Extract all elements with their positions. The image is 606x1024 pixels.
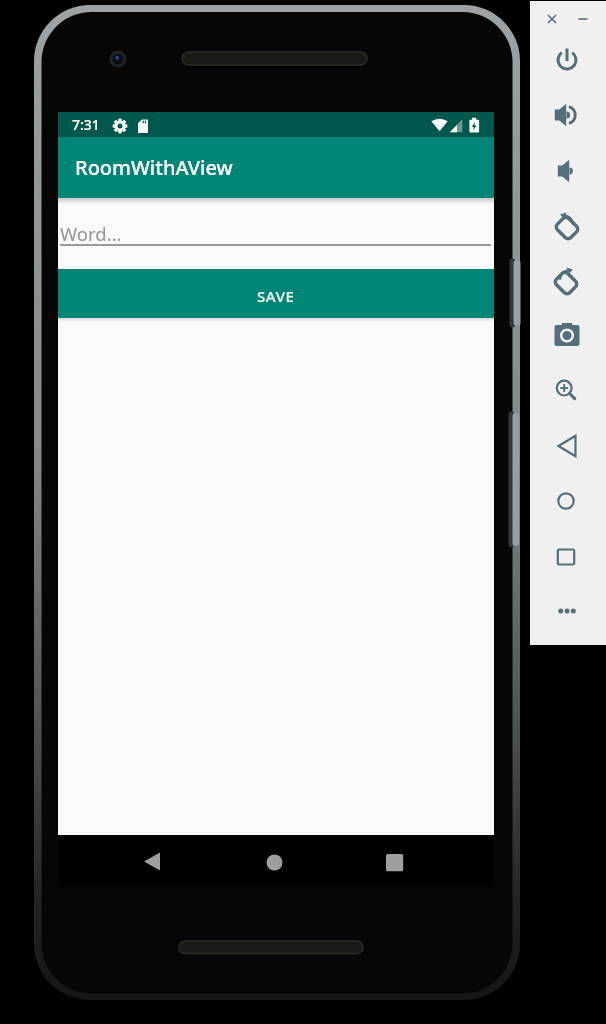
staticText: 7:31 xyxy=(72,115,100,134)
button[interactable] xyxy=(546,151,586,191)
staticText: Word... xyxy=(60,221,122,246)
staticText: SAVE xyxy=(257,286,295,306)
button[interactable] xyxy=(546,537,586,577)
button[interactable] xyxy=(547,591,587,631)
button[interactable] xyxy=(547,315,587,355)
button[interactable] xyxy=(547,426,587,466)
button[interactable] xyxy=(546,262,586,302)
button[interactable] xyxy=(546,481,586,521)
button[interactable]: SAVE xyxy=(58,269,494,318)
button[interactable] xyxy=(136,845,170,879)
button[interactable] xyxy=(575,11,591,27)
button[interactable] xyxy=(547,207,587,247)
button[interactable] xyxy=(547,40,587,80)
button[interactable] xyxy=(544,11,560,27)
button[interactable] xyxy=(377,845,411,879)
button[interactable] xyxy=(545,369,585,409)
button[interactable] xyxy=(257,845,291,879)
staticText: RoomWithAView xyxy=(75,154,233,181)
button[interactable]: Word... xyxy=(58,210,494,248)
button[interactable] xyxy=(546,95,586,135)
